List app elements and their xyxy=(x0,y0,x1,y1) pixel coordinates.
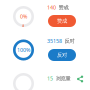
staticText: 100% xyxy=(17,46,30,54)
staticText: 反对 xyxy=(64,38,74,44)
staticText: 35158 xyxy=(47,37,62,45)
staticText: 赞成 xyxy=(57,18,67,24)
staticText: 浏览量 xyxy=(55,75,70,82)
staticText: 0% xyxy=(20,13,27,20)
button[interactable]: 赞成 xyxy=(48,15,76,27)
staticText: 反对 xyxy=(57,52,67,58)
staticText: 赞成 xyxy=(58,4,68,11)
staticText: 15 xyxy=(47,75,53,82)
button[interactable]: 反对 xyxy=(48,49,76,61)
staticText: 140 xyxy=(47,4,56,11)
button[interactable]: Share xyxy=(75,74,85,84)
